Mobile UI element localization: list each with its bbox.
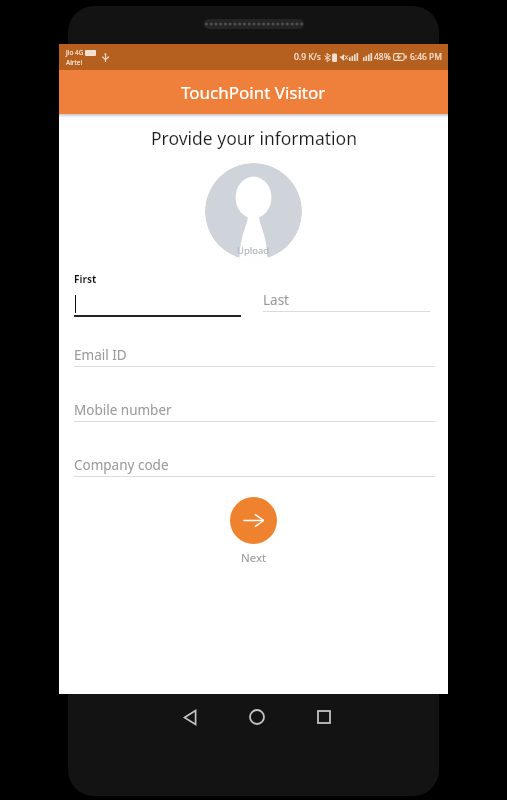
staticText: 6:46 PM — [410, 51, 442, 63]
staticText: Last — [263, 291, 289, 309]
staticText: First — [74, 272, 97, 286]
button[interactable] — [74, 292, 241, 315]
button[interactable]: Upload photo — [205, 163, 302, 260]
button[interactable]: Last — [263, 288, 430, 311]
button[interactable]: Mobile number — [74, 398, 435, 421]
staticText: 48% — [374, 51, 391, 63]
staticText: TouchPoint Visitor — [181, 81, 326, 104]
staticText: Jio 4G — [66, 48, 84, 57]
staticText: Upload — [237, 244, 270, 257]
button[interactable]: Back — [172, 699, 208, 735]
staticText: Airtel — [66, 58, 83, 67]
button[interactable]: Company code — [74, 453, 435, 476]
button[interactable]: Next — [230, 497, 277, 544]
button[interactable]: Recents — [306, 699, 342, 735]
button[interactable]: Home — [239, 699, 275, 735]
button[interactable]: Email ID — [74, 343, 435, 366]
staticText: Mobile number — [74, 401, 172, 419]
staticText: 0.9 K/s — [294, 51, 321, 63]
staticText: Next — [241, 550, 267, 566]
staticText: Company code — [74, 456, 169, 474]
staticText: Provide your information — [151, 126, 357, 150]
staticText: Email ID — [74, 346, 127, 364]
